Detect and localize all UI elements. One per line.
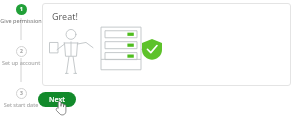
- staticText: 3: [20, 90, 23, 97]
- staticText: Great!: [52, 10, 78, 22]
- staticText: 1: [20, 6, 23, 13]
- button[interactable]: Next: [38, 92, 76, 107]
- button[interactable]: 3: [0, 88, 42, 108]
- staticText: 2: [20, 48, 23, 55]
- staticText: Set up account: [0, 59, 42, 66]
- staticText: Give permission: [0, 17, 42, 24]
- staticText: Next: [49, 95, 65, 105]
- button[interactable]: 1: [0, 4, 42, 24]
- staticText: Set start date: [0, 101, 42, 108]
- button[interactable]: 2: [0, 46, 42, 66]
- other: Pointer: [54, 100, 68, 116]
